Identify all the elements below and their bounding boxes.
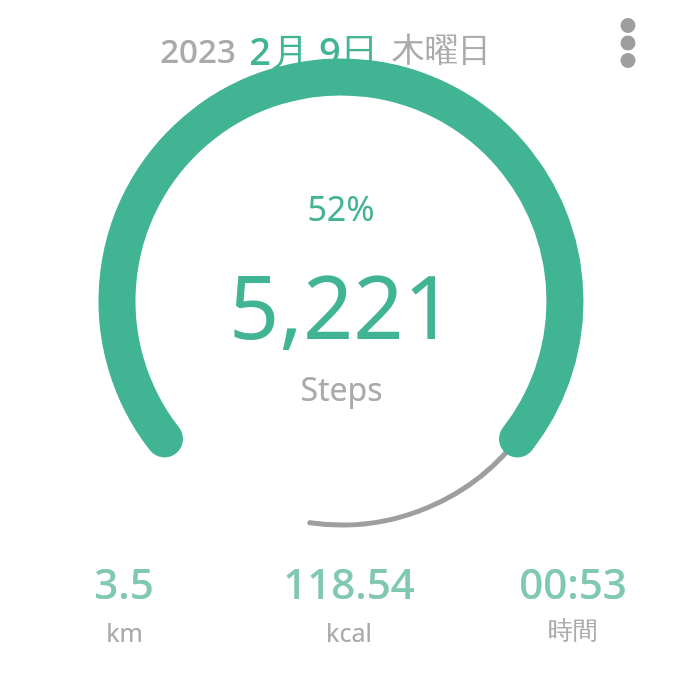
staticText: 52%: [307, 185, 375, 231]
button[interactable]: 118.54: [249, 554, 449, 649]
staticText: Steps: [300, 367, 383, 411]
button[interactable]: 00:53: [473, 554, 673, 646]
staticText: kcal: [326, 615, 372, 649]
staticText: 時間: [548, 615, 598, 646]
staticText: 木曜日: [392, 29, 491, 71]
staticText: 2月 9日: [249, 24, 379, 76]
button[interactable]: 2023: [160, 24, 491, 76]
staticText: 118.54: [283, 554, 415, 611]
staticText: 5,221: [229, 245, 454, 365]
staticText: 2023: [160, 28, 236, 73]
button[interactable]: More options: [600, 15, 656, 71]
button[interactable]: 3.5: [24, 554, 224, 649]
staticText: km: [106, 615, 143, 649]
staticText: 00:53: [519, 554, 627, 611]
button[interactable]: 52%: [141, 185, 541, 411]
staticText: 3.5: [94, 554, 154, 611]
